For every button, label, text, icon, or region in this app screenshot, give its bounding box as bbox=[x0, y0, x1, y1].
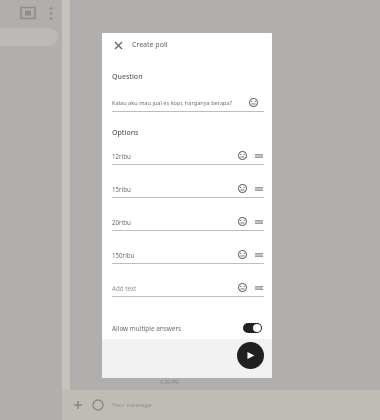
staticText: Allow multiple answers bbox=[112, 324, 182, 333]
button[interactable]: Reorder option bbox=[253, 216, 264, 227]
button[interactable]: 20ribu bbox=[102, 216, 272, 231]
staticText: 150ribu bbox=[112, 251, 135, 259]
button[interactable]: Allow multiple answers bbox=[102, 317, 272, 339]
button[interactable]: Insert emoji bbox=[237, 183, 248, 194]
button[interactable]: 15ribu bbox=[102, 183, 272, 198]
button[interactable]: Insert emoji bbox=[237, 282, 248, 293]
button[interactable]: Reorder option bbox=[253, 282, 264, 293]
staticText: 15ribu bbox=[112, 185, 131, 193]
button[interactable]: Kalau aku mau jual es kopi, harganya ber… bbox=[102, 97, 272, 112]
button[interactable]: Reorder option bbox=[253, 150, 264, 161]
button[interactable]: Insert emoji bbox=[237, 249, 248, 260]
staticText: Your message bbox=[112, 401, 152, 409]
staticText: Question bbox=[112, 72, 143, 82]
button[interactable]: Send poll bbox=[237, 342, 264, 369]
button[interactable]: Insert emoji bbox=[248, 97, 259, 108]
button[interactable]: Insert emoji bbox=[237, 216, 248, 227]
button[interactable]: Insert emoji bbox=[237, 150, 248, 161]
staticText: Add text bbox=[112, 284, 137, 292]
staticText: Kalau aku mau jual es kopi, harganya ber… bbox=[112, 99, 233, 107]
staticText: 20ribu bbox=[112, 218, 131, 226]
button[interactable]: Close bbox=[111, 38, 125, 52]
staticText: Options bbox=[112, 128, 139, 138]
staticText: Create poll bbox=[132, 40, 168, 50]
button[interactable]: 150ribu bbox=[102, 249, 272, 264]
button[interactable]: Add text bbox=[102, 282, 272, 297]
button[interactable]: 12ribu bbox=[102, 150, 272, 165]
button[interactable]: Reorder option bbox=[253, 183, 264, 194]
button[interactable]: Reorder option bbox=[253, 249, 264, 260]
staticText: 12ribu bbox=[112, 152, 131, 160]
staticText: 4:39 PM bbox=[160, 379, 179, 386]
